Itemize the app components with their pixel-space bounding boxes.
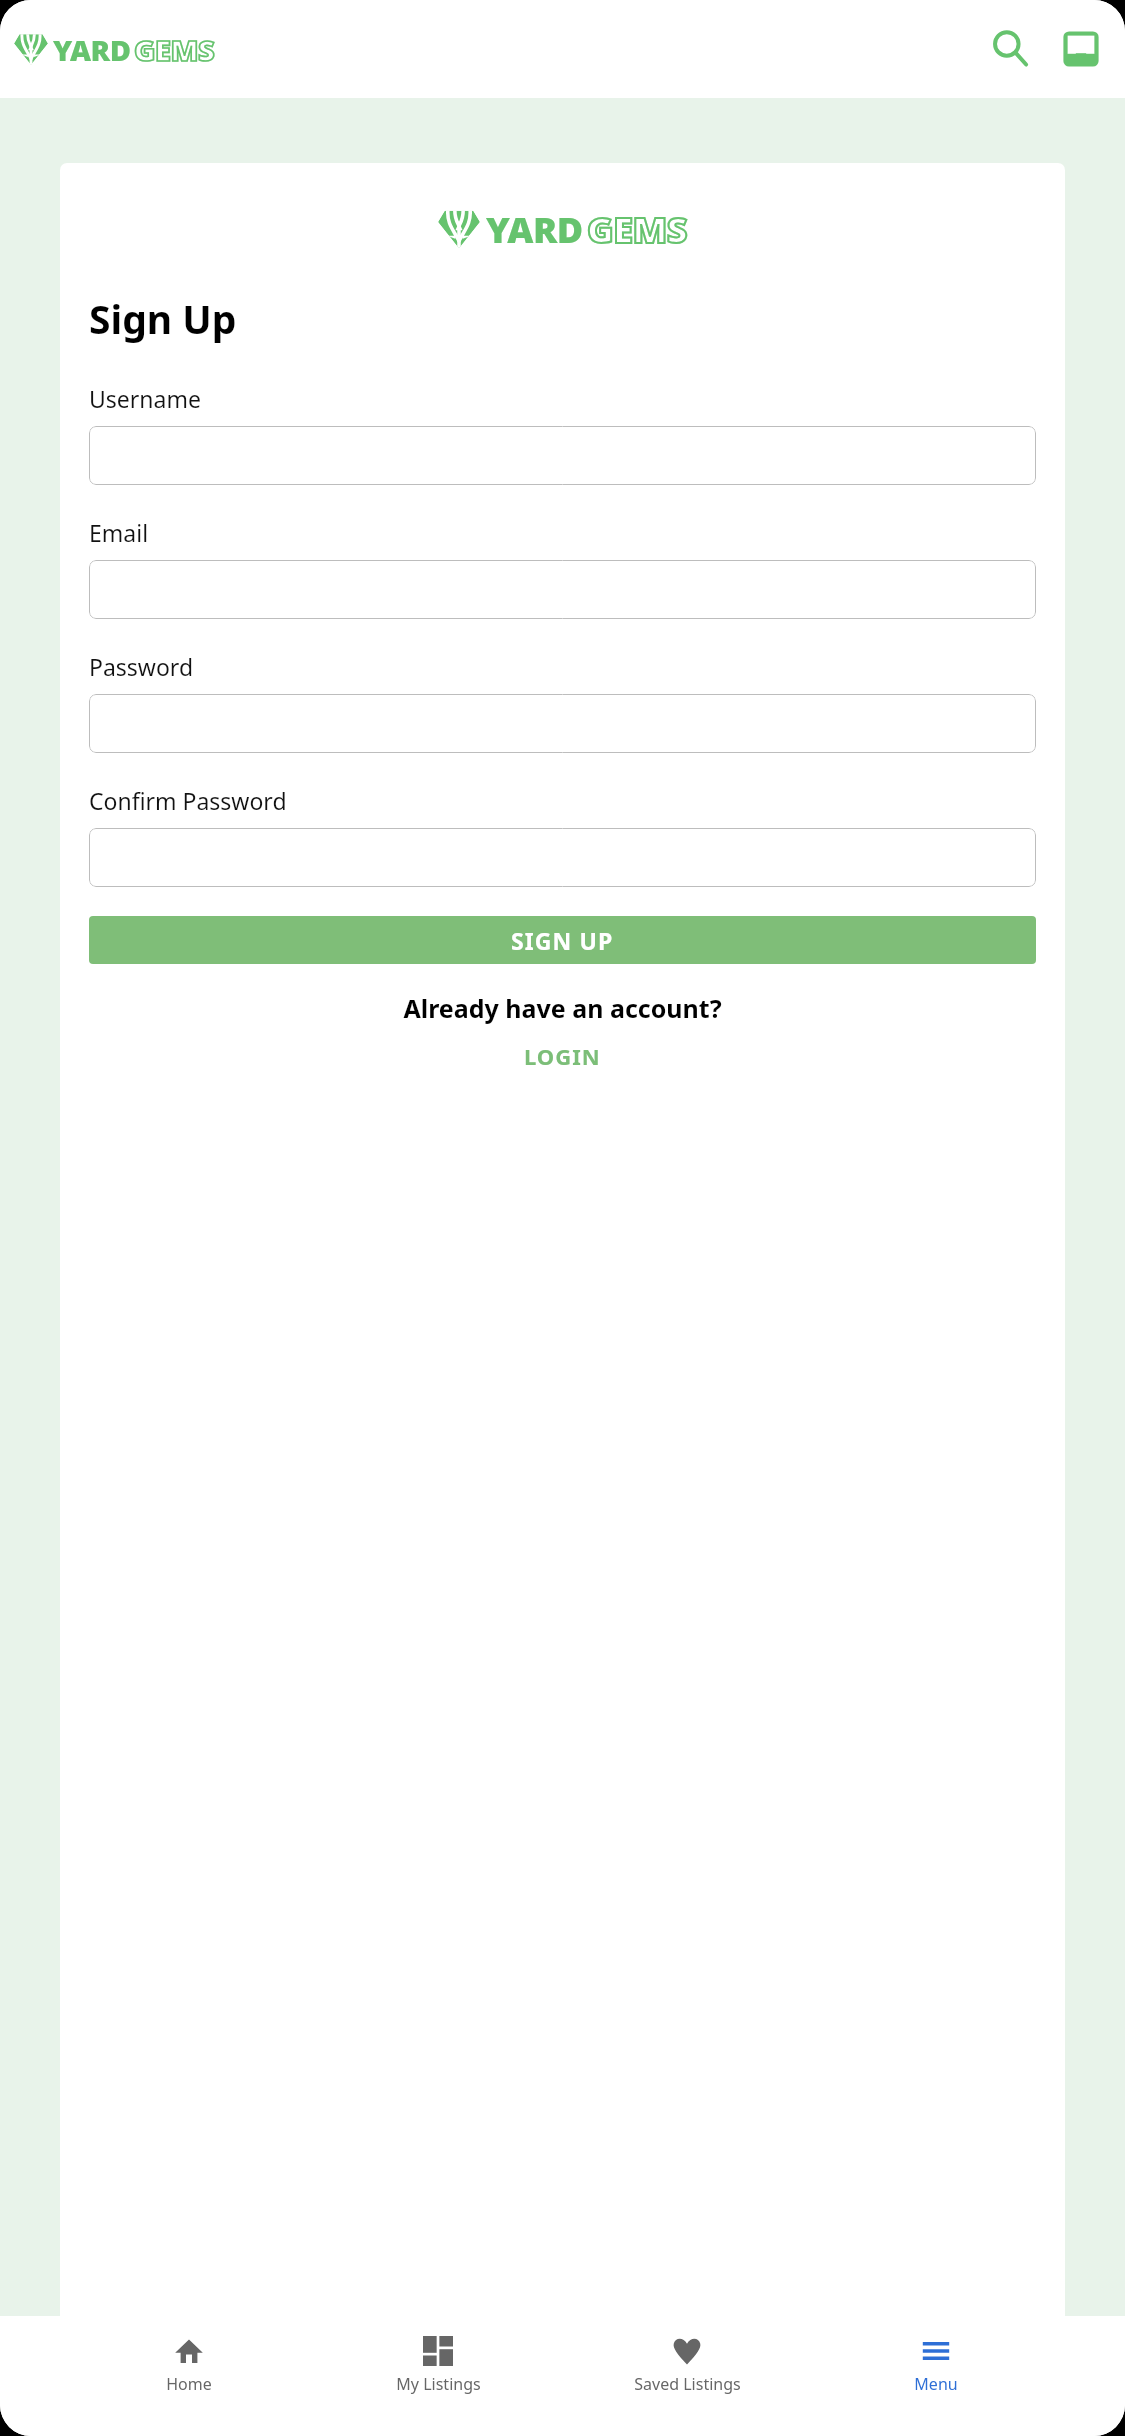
button[interactable]: [89, 694, 1036, 753]
button[interactable]: Saved Listings: [627, 2330, 747, 2401]
staticText: Home: [166, 2373, 212, 2395]
staticText: Sign Up: [89, 292, 237, 345]
staticText: LOGIN: [524, 1041, 601, 1071]
button[interactable]: [89, 560, 1036, 619]
button[interactable]: YARD: [14, 30, 215, 69]
button[interactable]: Inbox: [1055, 23, 1107, 75]
staticText: SIGN UP: [511, 925, 614, 956]
button[interactable]: [89, 426, 1036, 485]
staticText: Email: [89, 517, 149, 548]
button[interactable]: Search: [985, 23, 1037, 75]
button[interactable]: My Listings: [378, 2330, 498, 2401]
staticText: GEMS: [587, 205, 687, 254]
button[interactable]: Menu: [876, 2330, 996, 2401]
staticText: Confirm Password: [89, 785, 287, 816]
button[interactable]: Home: [129, 2330, 249, 2401]
button[interactable]: LOGIN: [89, 1041, 1036, 1071]
staticText: Password: [89, 651, 194, 682]
staticText: YARD: [53, 30, 131, 69]
staticText: Menu: [914, 2373, 958, 2395]
staticText: My Listings: [396, 2373, 481, 2395]
button[interactable]: [89, 828, 1036, 887]
staticText: Already have an account?: [89, 991, 1036, 1025]
staticText: Username: [89, 383, 201, 414]
staticText: YARD: [486, 205, 583, 254]
staticText: GEMS: [134, 30, 215, 69]
button[interactable]: SIGN UP: [89, 916, 1036, 964]
staticText: Saved Listings: [634, 2373, 741, 2395]
